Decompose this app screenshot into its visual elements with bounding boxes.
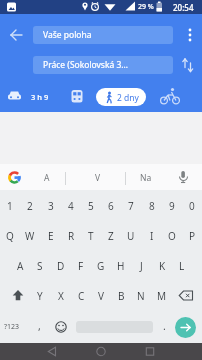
button[interactable]: L <box>172 254 192 278</box>
button[interactable] <box>178 55 198 75</box>
button[interactable]: 2 <box>20 195 40 217</box>
button[interactable]: 5 <box>81 195 101 217</box>
staticText: O <box>168 229 176 243</box>
staticText: 9 <box>169 199 175 213</box>
staticText: S <box>37 259 43 273</box>
button[interactable]: A <box>10 254 30 278</box>
button[interactable]: E <box>41 224 61 248</box>
button[interactable]: P <box>182 224 202 248</box>
button[interactable]: Q <box>0 224 20 248</box>
button[interactable]: Práce (Sokolovská 3… <box>33 56 173 74</box>
staticText: K <box>159 259 166 273</box>
button[interactable]: I <box>142 224 162 248</box>
button[interactable]: U <box>121 224 141 248</box>
button[interactable]: O <box>162 224 182 248</box>
button[interactable]: Z <box>101 224 121 248</box>
staticText: W <box>25 229 35 243</box>
button[interactable]: 6 <box>101 195 121 217</box>
button[interactable] <box>175 317 196 338</box>
button[interactable] <box>158 86 184 108</box>
staticText: 4 <box>68 199 74 213</box>
button[interactable]: , <box>31 315 47 337</box>
button[interactable]: B <box>111 284 131 308</box>
staticText: 5 <box>88 199 94 213</box>
button[interactable] <box>40 343 64 360</box>
button[interactable] <box>174 168 192 186</box>
staticText: V <box>98 289 104 303</box>
button[interactable]: ?123 <box>0 316 24 338</box>
staticText: M <box>157 289 167 303</box>
button[interactable]: M <box>152 284 172 308</box>
staticText: B <box>118 289 125 303</box>
staticText: . <box>163 319 166 333</box>
button[interactable] <box>182 26 198 44</box>
button[interactable] <box>52 318 70 336</box>
button[interactable]: X <box>51 284 71 308</box>
staticText: J <box>140 259 143 273</box>
staticText: Z <box>108 229 114 243</box>
staticText: ?123 <box>4 322 20 332</box>
staticText: 2 dny <box>117 92 139 104</box>
button[interactable]: J <box>131 254 151 278</box>
button[interactable] <box>89 343 113 360</box>
button[interactable]: A <box>32 170 62 186</box>
button[interactable]: 0 <box>182 195 202 217</box>
button[interactable]: V <box>83 170 113 186</box>
button[interactable]: Vaše poloha <box>33 26 173 44</box>
staticText: U <box>127 229 135 243</box>
staticText: G <box>97 259 105 273</box>
button[interactable]: 3 <box>41 195 61 217</box>
button[interactable]: 1 <box>0 195 20 217</box>
button[interactable]: . <box>156 315 172 337</box>
button[interactable] <box>6 25 28 45</box>
button[interactable]: Y <box>30 284 50 308</box>
button[interactable]: D <box>51 254 71 278</box>
staticText: Práce (Sokolovská 3… <box>43 59 129 71</box>
button[interactable] <box>7 170 22 185</box>
button[interactable] <box>138 343 162 360</box>
button[interactable] <box>6 285 30 307</box>
button[interactable]: H <box>111 254 131 278</box>
staticText: 29 % <box>138 2 154 12</box>
staticText: H <box>117 259 125 273</box>
staticText: 3 <box>48 199 54 213</box>
staticText: 2 <box>27 199 33 213</box>
staticText: 7 <box>128 199 134 213</box>
button[interactable]: 7 <box>121 195 141 217</box>
staticText: D <box>57 259 65 273</box>
button[interactable]: S <box>30 254 50 278</box>
button[interactable]: K <box>152 254 172 278</box>
button[interactable]: W <box>20 224 40 248</box>
staticText: , <box>38 319 41 333</box>
staticText: 6 <box>108 199 114 213</box>
button[interactable]: 3 h 9 <box>4 86 52 108</box>
button[interactable]: 8 <box>142 195 162 217</box>
staticText: N <box>137 289 145 303</box>
button[interactable]: 2 dny <box>96 88 146 106</box>
staticText: F <box>78 259 84 273</box>
button[interactable]: C <box>71 284 91 308</box>
staticText: V <box>95 172 101 184</box>
staticText: P <box>189 229 196 243</box>
staticText: 1 <box>7 199 13 213</box>
button[interactable]: F <box>71 254 91 278</box>
staticText: Q <box>6 229 14 243</box>
button[interactable]: R <box>61 224 81 248</box>
staticText: Y <box>37 289 43 303</box>
button[interactable] <box>66 86 88 108</box>
button[interactable]: V <box>91 284 111 308</box>
button[interactable]: G <box>91 254 111 278</box>
staticText: Na <box>140 172 152 184</box>
staticText: A <box>17 259 24 273</box>
button[interactable]: Na <box>131 170 161 186</box>
staticText: 3 h 9 <box>31 92 49 102</box>
staticText: A <box>44 172 50 184</box>
staticText: Vaše poloha <box>43 29 92 41</box>
button[interactable] <box>174 285 198 307</box>
button[interactable]: 9 <box>162 195 182 217</box>
button[interactable]: T <box>81 224 101 248</box>
button[interactable]: 4 <box>61 195 81 217</box>
staticText: 8 <box>149 199 155 213</box>
button[interactable]: N <box>131 284 151 308</box>
